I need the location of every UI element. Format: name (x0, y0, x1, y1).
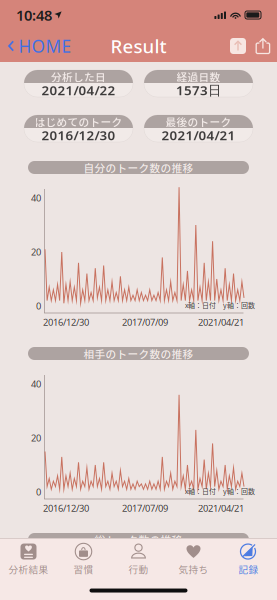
staticText: 記録 (238, 562, 258, 576)
staticText: 分析した日 (51, 69, 106, 84)
staticText: 2021/04/22 (41, 81, 115, 99)
staticText: 行動 (128, 562, 148, 576)
staticText: 20 (31, 432, 41, 444)
staticText: 20 (31, 246, 41, 258)
staticText: 2016/12/30 (41, 126, 115, 144)
staticText: 2017/07/09 (122, 502, 168, 514)
staticText: 分析結果 (8, 562, 48, 576)
staticText: 2021/04/21 (198, 316, 244, 328)
staticText: 0 (36, 486, 41, 498)
staticText: 総トーク数の推移 (94, 532, 182, 547)
staticText: 0 (36, 300, 41, 312)
button[interactable]: 記録 (221, 541, 276, 577)
staticText: 習慣 (73, 562, 93, 576)
staticText: 2021/04/21 (161, 126, 235, 144)
button[interactable]: Share (254, 37, 272, 55)
button[interactable]: HOME (5, 31, 77, 61)
staticText: 2021/04/21 (198, 502, 244, 514)
staticText: 40 (31, 192, 41, 204)
staticText: x軸：日付 y軸：回数 (185, 300, 255, 310)
staticText: 2016/12/30 (43, 316, 89, 328)
staticText: 1573日 (176, 81, 221, 99)
staticText: x軸：日付 y軸：回数 (185, 486, 255, 496)
staticText: 2016/12/30 (43, 502, 89, 514)
staticText: 2017/07/09 (122, 316, 168, 328)
staticText: 気持ち (178, 562, 208, 576)
button[interactable]: 行動 (111, 541, 166, 577)
staticText: 相手のトーク数の推移 (83, 346, 193, 361)
button[interactable]: 分析結果 (1, 541, 56, 577)
button[interactable]: 気持ち (166, 541, 221, 577)
staticText: 最後のトーク (165, 114, 231, 129)
staticText: HOME (18, 34, 71, 57)
staticText: 自分のトーク数の推移 (83, 160, 193, 175)
button[interactable]: 習慣 (56, 541, 111, 577)
staticText: 経過日数 (176, 69, 220, 84)
staticText: Result (110, 34, 166, 58)
button[interactable]: Save image (229, 37, 247, 55)
staticText: 10:48 (16, 5, 52, 25)
staticText: はじめてのトーク (34, 114, 122, 129)
staticText: 40 (31, 378, 41, 390)
